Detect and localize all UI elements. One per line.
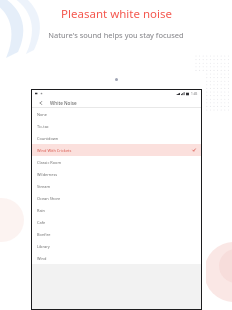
button[interactable]: Tic-tac — [32, 120, 201, 132]
button[interactable]: Cafe — [32, 216, 201, 228]
staticText: Wilderness — [37, 172, 58, 177]
button[interactable]: Back — [36, 98, 45, 107]
staticText: Cafe — [37, 220, 46, 225]
staticText: Wind — [37, 256, 47, 261]
button[interactable]: Classic Room — [32, 156, 201, 168]
staticText: 1:45 — [191, 92, 198, 96]
button[interactable]: Library — [32, 240, 201, 252]
staticText: Stream — [37, 184, 51, 189]
staticText: Bonfire — [37, 232, 51, 237]
button[interactable]: None — [32, 108, 201, 120]
button[interactable]: Stream — [32, 180, 201, 192]
staticText: Ocean Shore — [37, 196, 61, 201]
staticText: Wind With Crickets — [37, 148, 72, 153]
button[interactable]: Countdown — [32, 132, 201, 144]
staticText: Library — [37, 244, 50, 249]
staticText: Rain — [37, 208, 46, 213]
staticText: None — [37, 112, 47, 117]
button[interactable]: Wilderness — [32, 168, 201, 180]
button[interactable]: Bonfire — [32, 228, 201, 240]
staticText: Tic-tac — [37, 124, 49, 129]
staticText: Pleasant white noise — [61, 6, 172, 22]
staticText: Nature's sound helps you stay focused — [48, 30, 184, 40]
staticText: Countdown — [37, 136, 59, 141]
staticText: Classic Room — [37, 160, 62, 165]
button[interactable]: Wind — [32, 252, 201, 264]
button[interactable]: Rain — [32, 204, 201, 216]
button[interactable]: Ocean Shore — [32, 192, 201, 204]
button[interactable]: Wind With Crickets — [32, 144, 201, 156]
staticText: White Noise — [50, 100, 77, 106]
